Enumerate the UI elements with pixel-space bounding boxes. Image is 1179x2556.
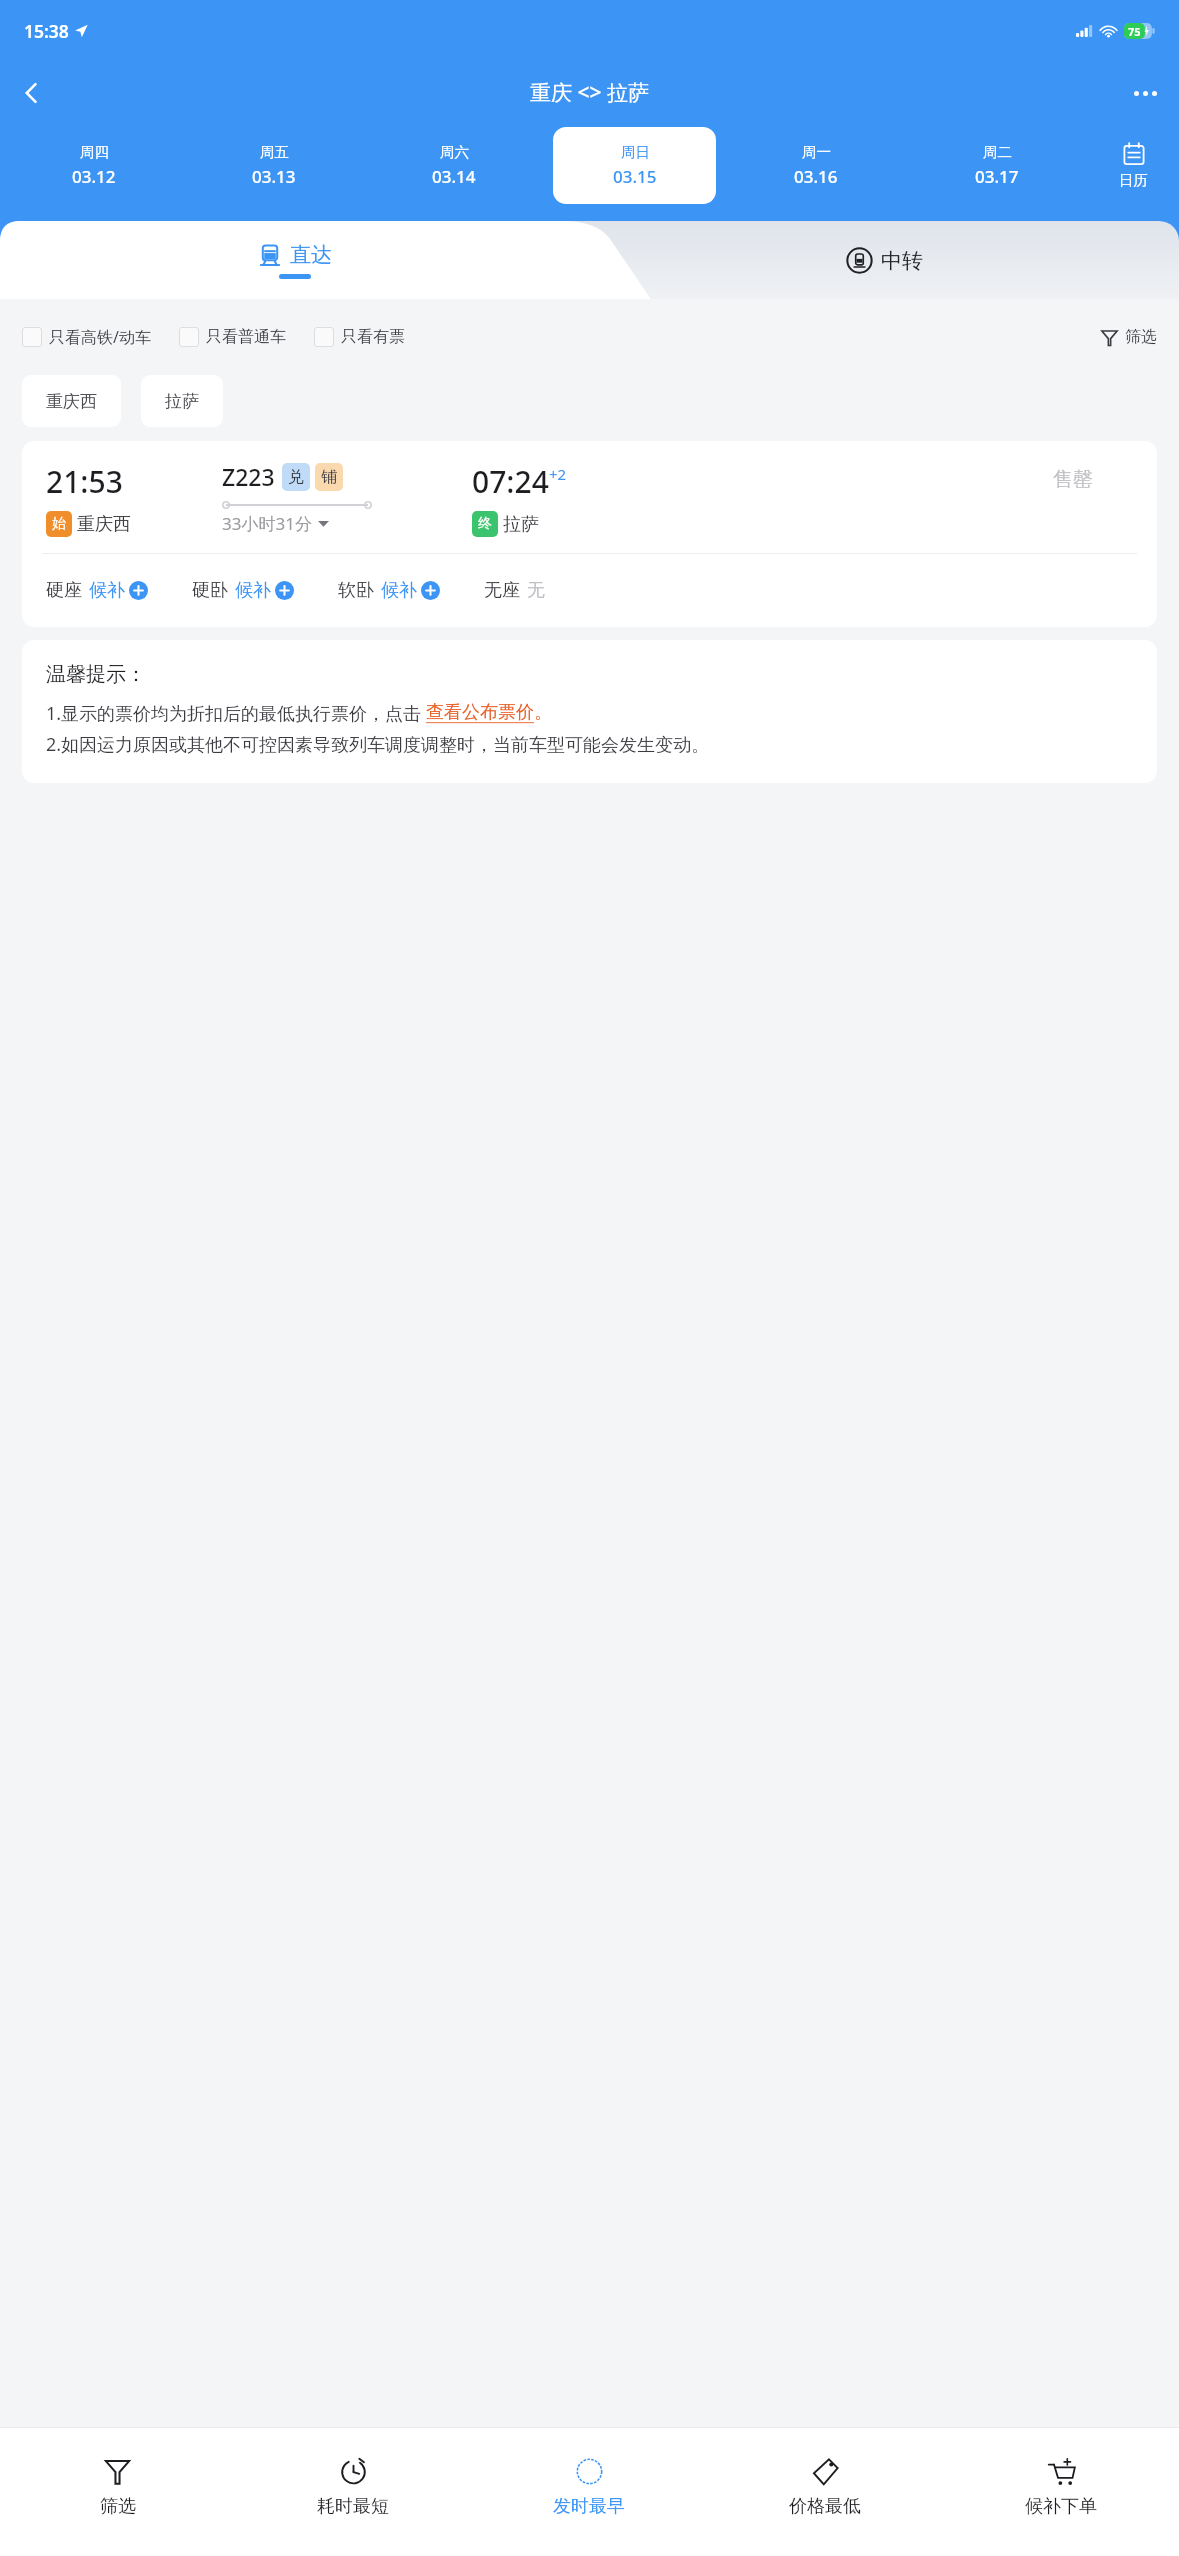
button[interactable]: 周一 — [734, 127, 897, 204]
button[interactable]: 拉萨 — [141, 375, 223, 427]
staticText: 候补 — [235, 579, 271, 602]
button[interactable]: 耗时最短 — [235, 2428, 471, 2546]
staticText: 03.14 — [432, 165, 476, 188]
staticText: 始 — [52, 515, 66, 533]
button[interactable]: 周日 — [553, 127, 716, 204]
staticText: 价格最低 — [789, 2495, 861, 2518]
staticText: 03.17 — [975, 165, 1019, 188]
staticText: 只看有票 — [341, 327, 405, 347]
staticText: 1.显示的票价均为折扣后的最低执行票价，点击 — [46, 701, 426, 726]
button[interactable]: 候补下单 — [943, 2428, 1179, 2546]
button[interactable]: 筛选 — [1100, 327, 1157, 347]
staticText: 候补 — [89, 579, 125, 602]
staticText: 候补 — [381, 579, 417, 602]
staticText: 03.12 — [72, 165, 116, 188]
staticText: 重庆西 — [77, 513, 131, 536]
button[interactable]: 硬卧 — [192, 579, 294, 602]
staticText: +2 — [549, 464, 567, 484]
staticText: 重庆 <> 拉萨 — [530, 78, 649, 107]
button[interactable]: 周五 — [193, 127, 355, 204]
staticText: 只看普通车 — [206, 327, 286, 347]
staticText: 只看高铁/动车 — [49, 326, 151, 348]
staticText: 15:38 — [24, 19, 69, 43]
button[interactable]: 中转 — [589, 221, 1179, 299]
staticText: 耗时最短 — [317, 2495, 389, 2518]
button[interactable]: 只看有票 — [314, 327, 405, 347]
staticText: 拉萨 — [165, 391, 199, 412]
button[interactable]: 周六 — [373, 127, 535, 204]
button[interactable]: 直达 — [0, 221, 589, 299]
button[interactable]: 21:53 — [22, 441, 1157, 627]
button[interactable]: 无座 — [484, 579, 545, 602]
staticText: 无 — [527, 579, 545, 602]
staticText: 21:53 — [46, 461, 123, 502]
button[interactable]: Back — [8, 69, 56, 117]
staticText: 33小时31分 — [222, 512, 312, 535]
staticText: 重庆西 — [46, 391, 97, 412]
staticText: 硬座 — [46, 579, 82, 602]
staticText: 周一 — [802, 143, 831, 161]
button[interactable]: 发时最早 — [471, 2428, 707, 2546]
staticText: 周二 — [983, 143, 1012, 161]
staticText: 日历 — [1119, 171, 1148, 189]
staticText: 周日 — [621, 143, 650, 161]
button[interactable]: 周四 — [13, 127, 175, 204]
button[interactable]: 价格最低 — [707, 2428, 943, 2546]
staticText: 候补下单 — [1025, 2495, 1097, 2518]
staticText: 03.13 — [252, 165, 296, 188]
staticText: 售罄 — [1053, 467, 1093, 492]
button[interactable]: 重庆西 — [22, 375, 121, 427]
button[interactable]: 只看高铁/动车 — [22, 326, 151, 348]
staticText: 周六 — [440, 143, 469, 161]
staticText: 终 — [478, 515, 492, 533]
button[interactable]: 软卧 — [338, 579, 440, 602]
staticText: 。 — [534, 701, 552, 724]
staticText: 无座 — [484, 579, 520, 602]
button[interactable]: 硬座 — [46, 579, 148, 602]
staticText: 拉萨 — [503, 513, 539, 536]
button[interactable]: 查看公布票价 — [426, 701, 534, 724]
button[interactable]: 只看普通车 — [179, 327, 286, 347]
staticText: 软卧 — [338, 579, 374, 602]
staticText: 兑 — [288, 467, 304, 487]
button[interactable]: 周二 — [915, 127, 1078, 204]
button[interactable]: 日历 — [1087, 124, 1179, 207]
staticText: 筛选 — [100, 2495, 136, 2518]
button[interactable]: 筛选 — [0, 2428, 235, 2546]
staticText: 直达 — [290, 242, 332, 268]
staticText: 75 — [1128, 24, 1141, 39]
staticText: 03.15 — [613, 165, 657, 188]
staticText: 周五 — [260, 143, 289, 161]
button[interactable]: More options — [1121, 69, 1169, 117]
staticText: 发时最早 — [553, 2495, 625, 2518]
staticText: 中转 — [881, 248, 923, 274]
staticText: 2.如因运力原因或其他不可控因素导致列车调度调整时，当前车型可能会发生变动。 — [46, 732, 710, 757]
staticText: 硬卧 — [192, 579, 228, 602]
staticText: 铺 — [321, 467, 337, 487]
staticText: 温馨提示： — [46, 662, 146, 687]
staticText: 筛选 — [1125, 327, 1157, 347]
staticText: Z223 — [222, 461, 275, 492]
staticText: 07:24 — [472, 461, 549, 502]
staticText: 周四 — [80, 143, 109, 161]
staticText: 03.16 — [794, 165, 838, 188]
